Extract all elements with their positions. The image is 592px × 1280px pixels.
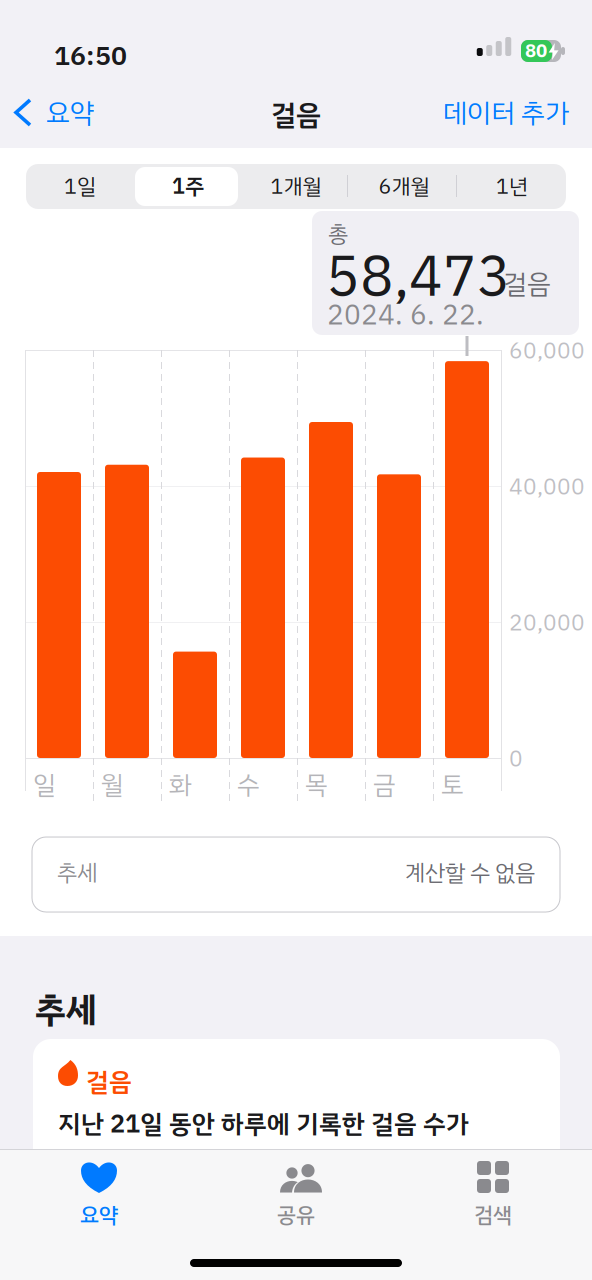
staticText: 6개월 [378,170,429,202]
staticText: 요약 [80,1199,118,1231]
staticText: 20,000 [509,606,585,640]
staticText: 40,000 [509,470,585,504]
staticText: 추세 [35,984,97,1036]
staticText: 목 [305,766,328,804]
staticText: 16:50 [54,36,127,76]
button[interactable]: 데이터 추가 [425,82,585,148]
button[interactable]: 6개월 [350,164,458,209]
staticText: 금 [373,766,396,804]
staticText: 80 [525,37,547,65]
staticText: 0 [509,742,523,776]
staticText: 총 [328,217,348,251]
staticText: 토 [441,766,464,804]
staticText: 60,000 [509,334,585,368]
staticText: 58,473 [326,235,511,319]
button[interactable]: 요약 [0,1157,197,1235]
staticText: 늘었습니다. [58,1143,181,1181]
staticText: 검색 [474,1199,512,1231]
button[interactable]: 추세 [32,837,560,912]
staticText: 1일 [64,170,96,202]
staticText: 요약 [46,93,94,133]
staticText: 수 [237,766,260,804]
button[interactable]: 검색 [394,1157,591,1235]
button[interactable]: 걸음 [33,1039,560,1199]
button[interactable]: 1일 [26,164,134,209]
staticText: 공유 [277,1199,315,1231]
staticText: 월 [101,766,124,804]
staticText: 화 [169,766,192,804]
staticText: 걸음 [503,264,551,304]
staticText: 계산할 수 없음 [405,856,535,890]
staticText: 2024. 6. 22. [327,294,484,336]
staticText: 걸음 [271,94,321,136]
staticText: 일 [33,766,56,804]
staticText: 걸음 [86,1063,132,1101]
button[interactable]: 1주 [134,164,242,209]
button[interactable]: 공유 [197,1157,394,1235]
button[interactable]: 요약 [0,82,110,148]
staticText: 데이터 추가 [443,93,569,133]
staticText: 추세 [57,856,97,890]
staticText: 1주 [172,170,204,202]
staticText: 지난 21일 동안 하루에 기록한 걸음 수가 [58,1105,469,1143]
button[interactable]: 1개월 [242,164,350,209]
staticText: 1개월 [270,170,321,202]
button[interactable]: 1년 [458,164,566,209]
staticText: 1년 [496,170,528,202]
